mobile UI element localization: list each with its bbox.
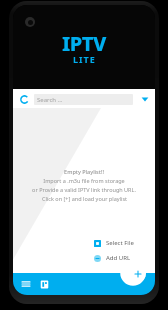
staticText: Click on [+] and load your playlist: [42, 195, 127, 202]
staticText: Import a .m3u file from storage: [43, 177, 125, 184]
staticText: Search ...: [37, 96, 63, 104]
staticText: LITE: [73, 53, 96, 65]
button[interactable]: Add playlist: [129, 265, 146, 282]
staticText: IPTV: [62, 30, 106, 57]
staticText: Select File: [106, 239, 134, 247]
button[interactable]: Playlist: [37, 277, 51, 291]
button[interactable]: Select File: [88, 238, 152, 248]
staticText: or Provide a valid IPTV link through URL…: [32, 186, 136, 193]
button[interactable]: Menu: [19, 277, 33, 291]
button[interactable]: Cast: [139, 93, 151, 105]
staticText: Empty Playlist!!: [64, 168, 104, 175]
button[interactable]: Add URL: [88, 253, 152, 263]
button[interactable]: Refresh: [17, 92, 31, 106]
button[interactable]: Search ...: [34, 94, 133, 105]
staticText: Add URL: [106, 254, 131, 262]
